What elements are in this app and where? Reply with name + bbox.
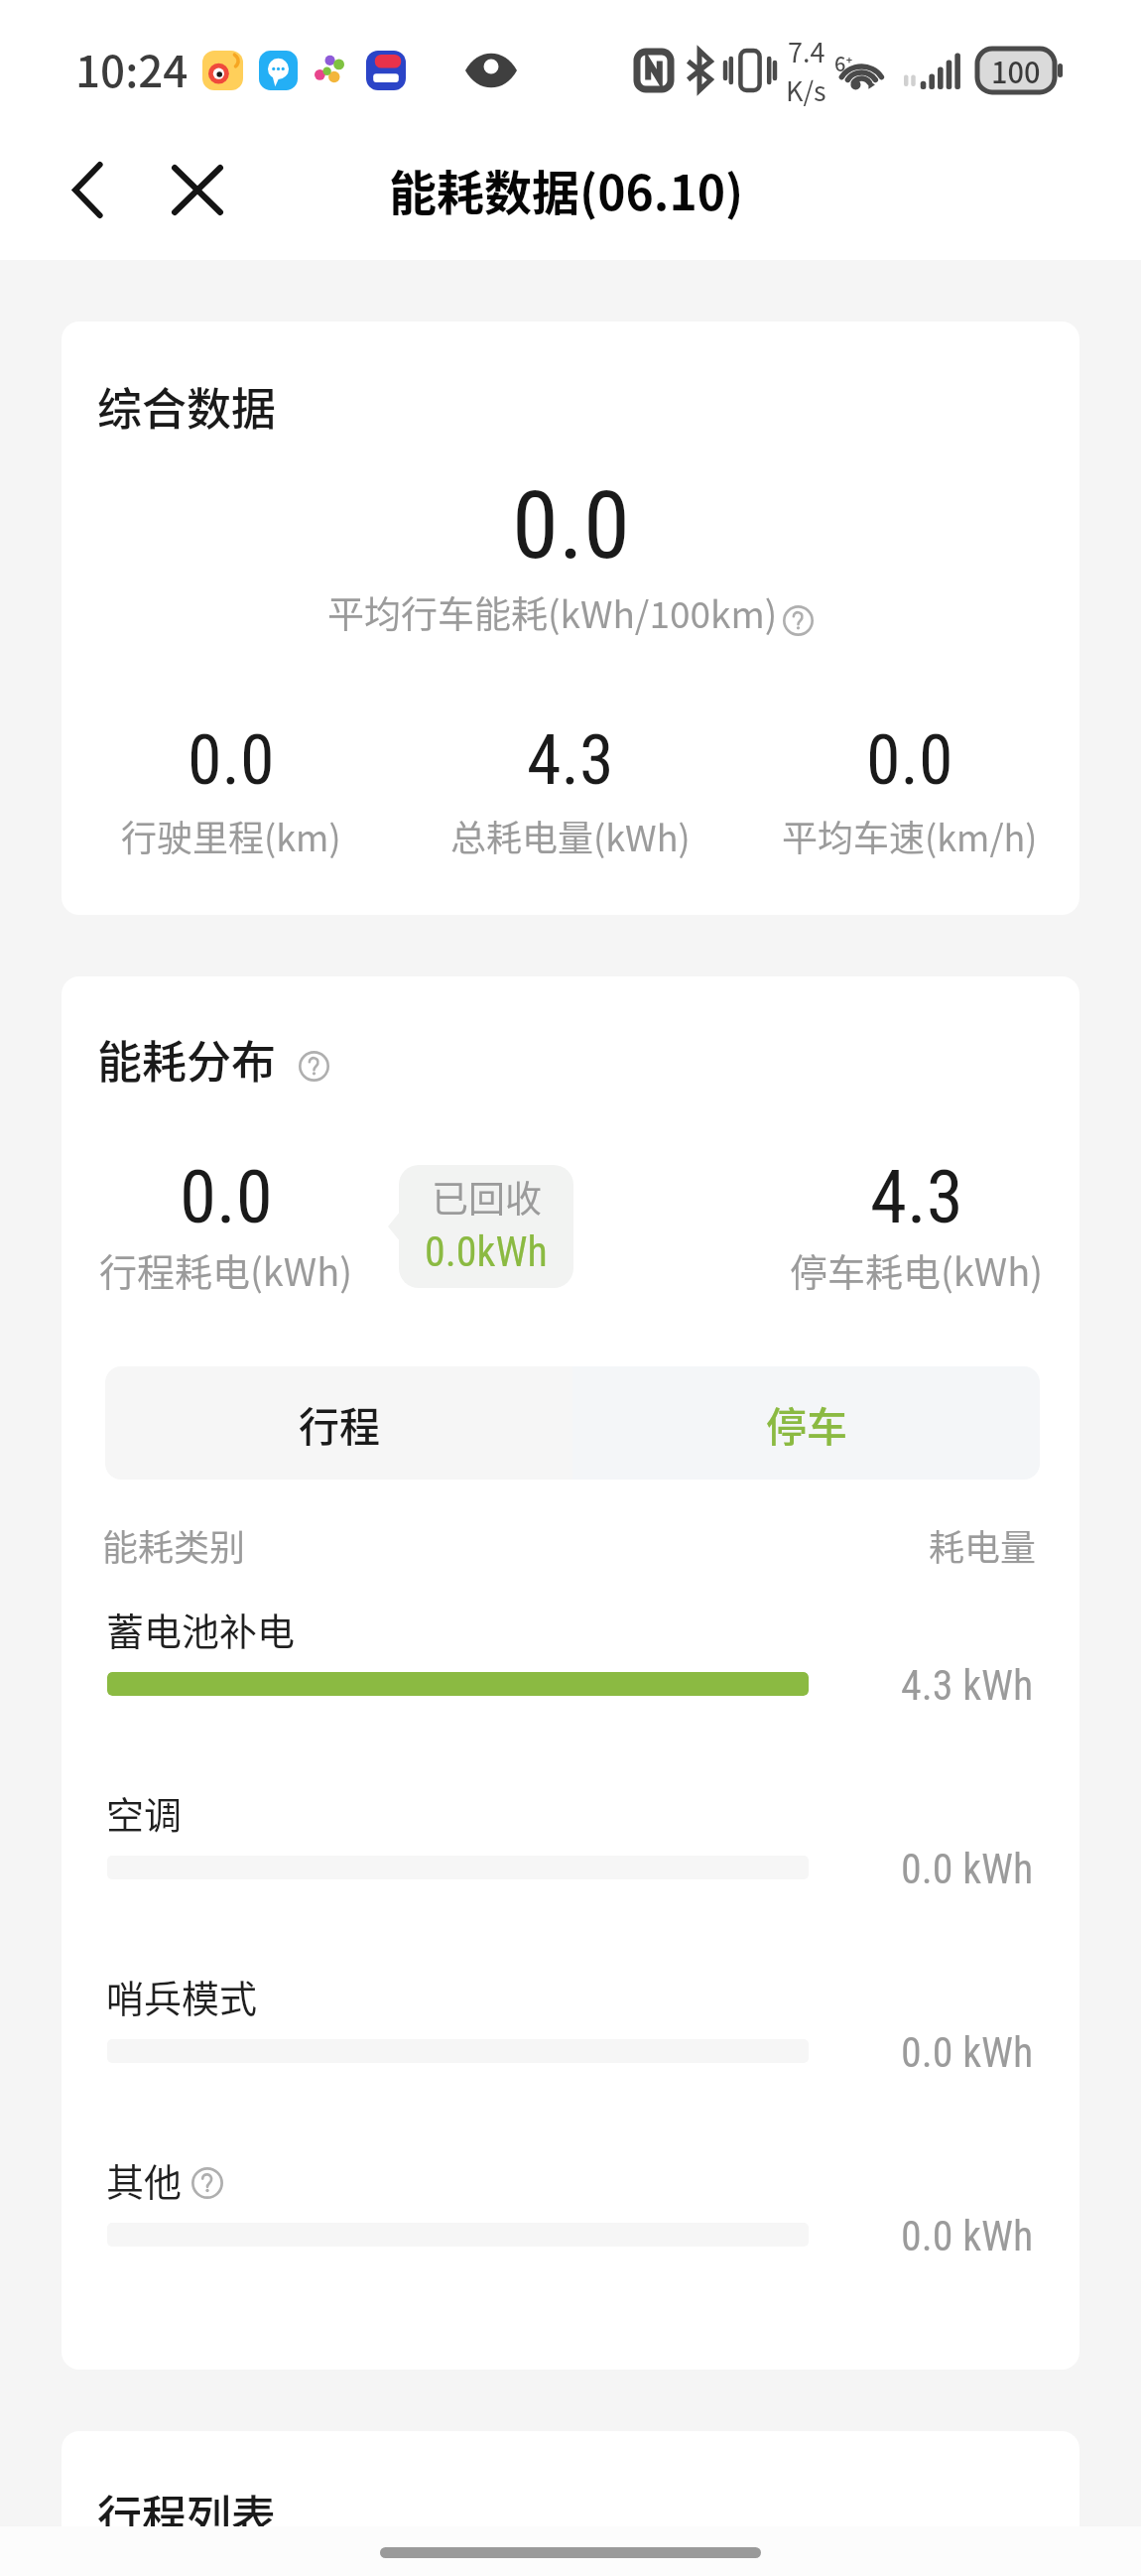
staticText: 4.3: [527, 719, 614, 801]
staticText: 蓄电池补电: [106, 1602, 296, 1656]
staticText: 行程列表: [97, 2482, 277, 2546]
staticText: 10:24: [75, 37, 189, 100]
staticText: 7.4: [788, 32, 825, 70]
staticText: 能耗类别: [102, 1519, 246, 1571]
staticText: 0.0: [866, 719, 953, 801]
staticText: 0.0kWh: [425, 1227, 548, 1276]
staticText: 0.0 kWh: [901, 2212, 1034, 2260]
staticText: 0.0 kWh: [901, 1845, 1034, 1893]
staticText: 0.0: [188, 719, 275, 801]
staticText: 平均车速(km/h): [782, 810, 1038, 861]
staticText: 100: [991, 50, 1041, 91]
staticText: 0.0: [512, 470, 630, 580]
staticText: 能耗分布: [97, 1027, 277, 1092]
button[interactable]: 行程: [105, 1366, 572, 1480]
staticText: 0.0 kWh: [901, 2028, 1034, 2077]
staticText: 4.3 kWh: [901, 1661, 1034, 1710]
staticText: 空调: [106, 1785, 183, 1840]
staticText: 能耗数据(06.10): [389, 155, 744, 224]
button[interactable]: Close: [158, 150, 237, 229]
staticText: 行程耗电(kWh): [99, 1242, 353, 1297]
staticText: 6⁺: [834, 49, 853, 77]
staticText: 已回收: [432, 1170, 542, 1224]
staticText: 平均行车能耗(kWh/100km): [327, 585, 778, 639]
staticText: 行驶里程(km): [121, 810, 341, 861]
staticText: 总耗电量(kWh): [450, 810, 691, 861]
staticText: 停车: [766, 1394, 847, 1453]
staticText: 4.3: [870, 1153, 963, 1240]
staticText: 0.0: [180, 1153, 273, 1240]
staticText: 哨兵模式: [106, 1969, 258, 2023]
button[interactable]: Back: [48, 150, 127, 229]
staticText: 行程: [299, 1394, 380, 1453]
staticText: 停车耗电(kWh): [790, 1242, 1044, 1297]
staticText: K/s: [786, 70, 826, 109]
staticText: 耗电量: [929, 1519, 1037, 1571]
staticText: 其他: [106, 2152, 183, 2207]
staticText: 综合数据: [97, 374, 277, 439]
button[interactable]: 停车: [572, 1366, 1040, 1480]
